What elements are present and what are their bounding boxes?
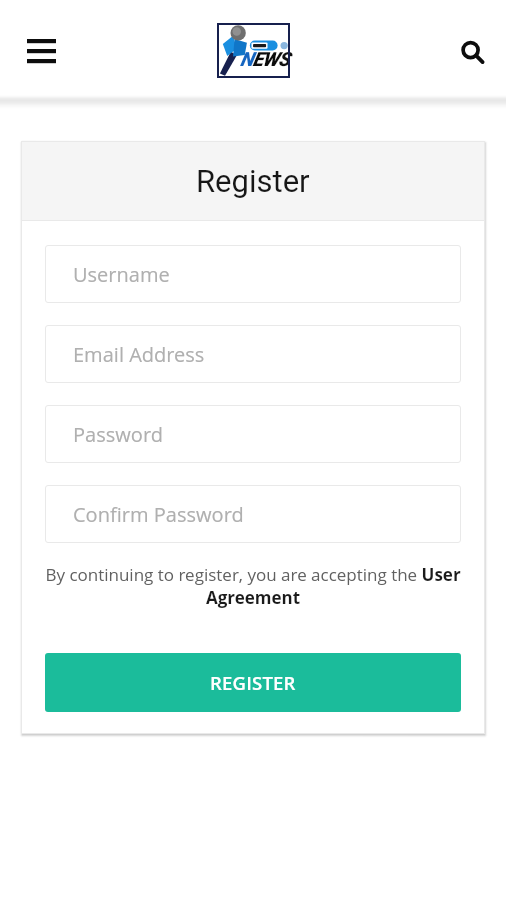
button[interactable]: Email Address xyxy=(45,325,461,383)
staticText: NEWS xyxy=(240,48,289,71)
button[interactable]: Username xyxy=(45,245,461,303)
staticText: By continuing to register, you are accep… xyxy=(45,563,461,609)
staticText: REGISTER xyxy=(210,670,296,695)
button[interactable]: Search xyxy=(441,22,499,80)
staticText: Password xyxy=(73,421,163,448)
button[interactable]: Password xyxy=(45,405,461,463)
staticText: Username xyxy=(73,261,170,288)
staticText: Email Address xyxy=(73,341,205,368)
staticText: Register xyxy=(196,163,310,199)
button[interactable]: Open navigation menu xyxy=(12,22,70,80)
button[interactable]: REGISTER xyxy=(45,653,461,712)
staticText: Confirm Password xyxy=(73,501,244,528)
button[interactable]: Confirm Password xyxy=(45,485,461,543)
